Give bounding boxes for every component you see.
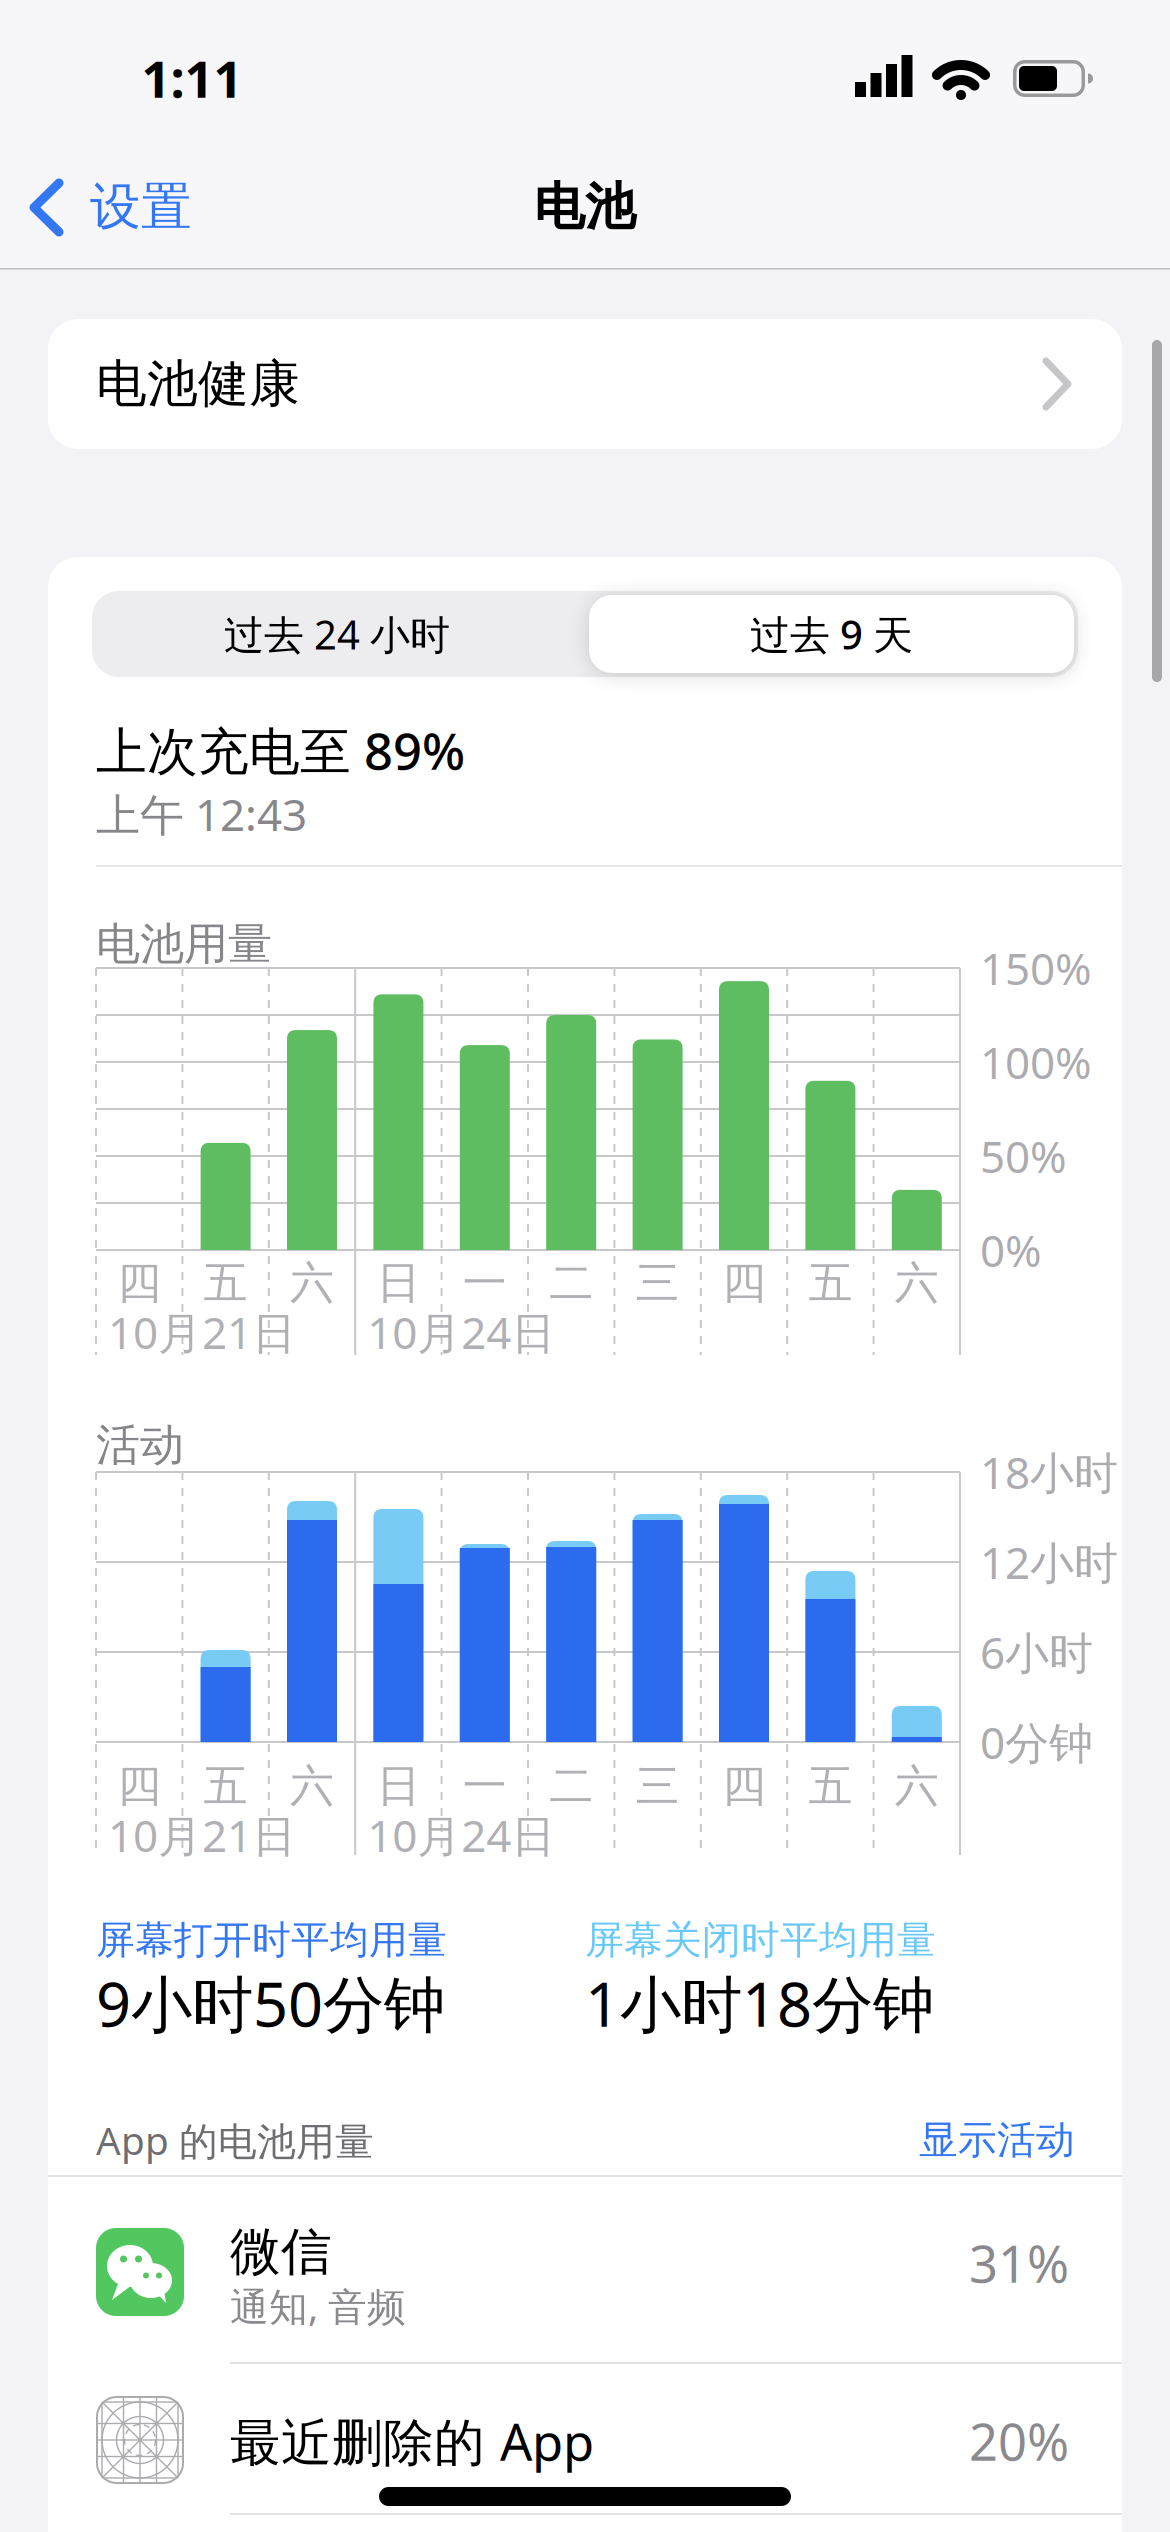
staticText: 12小时 [980,1533,1118,1591]
staticText: 10月24日 [367,1303,555,1361]
staticText: 屏幕打开时平均用量 [96,1916,447,1964]
staticText: 31% [969,2229,1069,2297]
staticText: 一 [463,1256,507,1310]
staticText: 10月21日 [108,1806,296,1864]
staticText: 设置 [90,176,192,238]
staticText: 日 [376,1256,420,1310]
staticText: 6小时 [980,1623,1093,1681]
staticText: 50% [980,1127,1067,1185]
staticText: 五 [808,1759,852,1813]
staticText: 1:11 [141,44,242,112]
staticText: 四 [117,1759,161,1813]
staticText: 五 [204,1256,248,1310]
button[interactable]: 最近删除的 App [48,2364,1122,2513]
staticText: 18小时 [980,1443,1118,1501]
staticText: 150% [980,939,1092,997]
button[interactable]: 过去 24 小时 [92,591,582,677]
staticText: 活动 [96,1418,184,1472]
staticText: 日 [376,1759,420,1813]
staticText: 五 [204,1759,248,1813]
staticText: 0% [980,1221,1042,1279]
staticText: 电池 [534,176,636,238]
staticText: 20% [969,2407,1069,2475]
staticText: 六 [895,1256,939,1310]
staticText: 电池健康 [96,353,300,415]
staticText: 通知, 音频 [230,2280,406,2332]
button[interactable]: 设置 [0,145,230,245]
staticText: 10月21日 [108,1303,296,1361]
staticText: 显示活动 [919,2116,1075,2164]
staticText: 二 [549,1759,593,1813]
staticText: 微信 [230,2221,332,2283]
staticText: 一 [463,1759,507,1813]
staticText: 10月24日 [367,1806,555,1864]
staticText: 四 [722,1256,766,1310]
staticText: 1小时18分钟 [585,1962,934,2044]
staticText: 屏幕关闭时平均用量 [585,1916,936,1964]
staticText: 六 [895,1759,939,1813]
staticText: 上午 12:43 [96,785,307,843]
staticText: 过去 24 小时 [224,607,450,660]
button[interactable]: 电池健康 [48,319,1122,449]
staticText: 三 [636,1759,680,1813]
button[interactable]: 微信 [48,2176,1122,2362]
staticText: 三 [636,1256,680,1310]
staticText: 五 [808,1256,852,1310]
button[interactable]: 过去 9 天 [585,591,1078,677]
staticText: 0分钟 [980,1713,1093,1771]
staticText: 电池用量 [96,917,272,971]
staticText: 六 [290,1256,334,1310]
staticText: 过去 9 天 [750,607,913,660]
staticText: 四 [117,1256,161,1310]
staticText: 最近删除的 App [230,2407,594,2475]
button[interactable]: 显示活动 [675,2116,1075,2164]
staticText: 六 [290,1759,334,1813]
staticText: 上次充电至 89% [96,716,465,784]
staticText: 四 [722,1759,766,1813]
staticText: 二 [549,1256,593,1310]
staticText: 100% [980,1033,1092,1091]
staticText: 9小时50分钟 [96,1962,445,2044]
staticText: App 的电池用量 [96,2114,374,2166]
